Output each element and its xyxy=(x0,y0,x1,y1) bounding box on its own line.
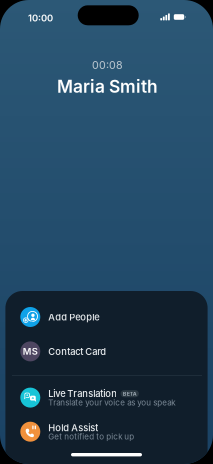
button[interactable]: Hold Assist xyxy=(0,0,213,464)
staticText: 10:00 xyxy=(28,12,53,24)
staticText: Translate your voice as you speak xyxy=(48,398,175,407)
staticText: Get notified to pick up xyxy=(48,432,134,442)
staticText: MS xyxy=(23,346,38,357)
staticText: Maria Smith xyxy=(57,76,158,97)
staticText: Live Translation xyxy=(48,388,117,399)
staticText: BETA xyxy=(123,390,137,397)
button[interactable]: Add People xyxy=(0,0,213,464)
staticText: 00:08 xyxy=(92,58,123,71)
button[interactable]: MS xyxy=(0,0,213,464)
staticText: Hold Assist xyxy=(48,422,98,433)
staticText: Add People xyxy=(48,312,99,323)
button[interactable]: Live Translation xyxy=(0,0,213,464)
staticText: Contact Card xyxy=(48,346,106,357)
